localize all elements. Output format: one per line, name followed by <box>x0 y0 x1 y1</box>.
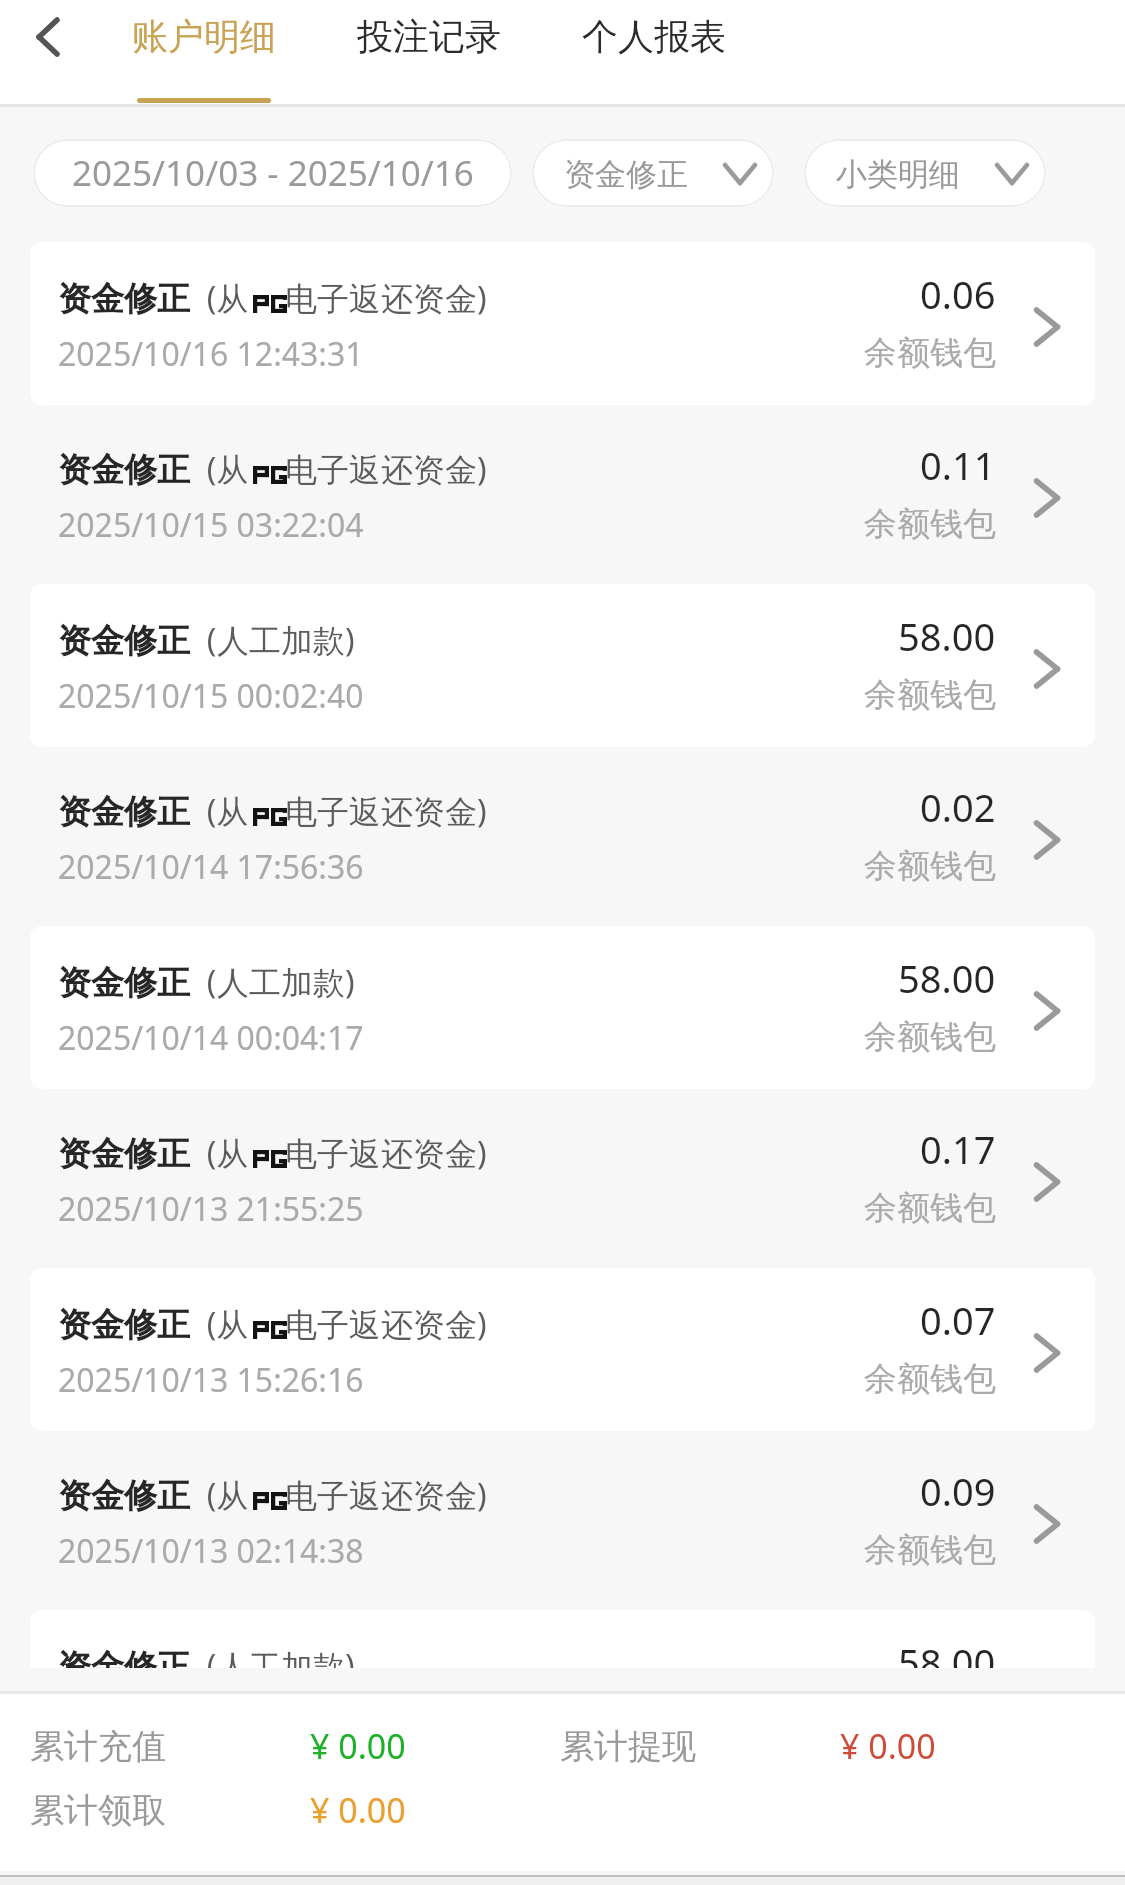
staticText: 2025/10/03 - 2025/10/16 <box>72 149 474 197</box>
staticText: 余额钱包 <box>864 845 996 887</box>
staticText: 2025/10/13 15:26:16 <box>58 1358 364 1402</box>
staticText: 电子返还资金) <box>285 1473 487 1517</box>
staticText: 余额钱包 <box>864 332 996 374</box>
button[interactable]: 资金修正 (从 <box>30 242 1095 405</box>
button[interactable]: 资金修正 (从 <box>30 1268 1095 1431</box>
staticText: 2025/10/14 17:56:36 <box>58 845 364 889</box>
button[interactable]: 投注记录 <box>346 0 511 104</box>
staticText: 0.09 <box>920 1465 996 1517</box>
staticText: 累计提现 <box>560 1725 696 1768</box>
staticText: 余额钱包 <box>864 1016 996 1058</box>
button[interactable]: 资金修正 (从 <box>30 1097 1095 1260</box>
staticText: 余额钱包 <box>864 1187 996 1229</box>
button[interactable]: 资金修正 (从 <box>30 413 1095 576</box>
staticText: 2025/10/14 00:04:17 <box>58 1016 364 1060</box>
staticText: 个人报表 <box>582 14 726 59</box>
staticText: 人工加款) <box>217 960 355 1004</box>
staticText: 0.17 <box>920 1123 996 1175</box>
staticText: 投注记录 <box>357 14 501 59</box>
staticText: 资金修正 (从 <box>58 1131 249 1175</box>
staticText: 电子返还资金) <box>285 1302 487 1346</box>
staticText: 资金修正 ( <box>58 960 217 1004</box>
button[interactable]: 资金修正 (从 <box>30 755 1095 918</box>
staticText: 人工加款) <box>217 618 355 662</box>
staticText: 资金修正 (从 <box>58 276 249 320</box>
staticText: 资金修正 (从 <box>58 447 249 491</box>
staticText: 账户明细 <box>132 14 276 59</box>
staticText: 0.02 <box>920 781 996 833</box>
staticText: 资金修正 (从 <box>58 789 249 833</box>
button[interactable]: 2025/10/03 - 2025/10/16 <box>33 139 512 207</box>
button[interactable]: 资金修正 ( <box>30 926 1095 1089</box>
staticText: 余额钱包 <box>864 503 996 545</box>
button[interactable]: 账户明细 <box>121 0 286 104</box>
staticText: 累计领取 <box>30 1789 166 1832</box>
staticText: 资金修正 (从 <box>58 1473 249 1517</box>
staticText: 58.00 <box>898 952 996 1004</box>
staticText: 电子返还资金) <box>285 789 487 833</box>
staticText: 资金修正 (从 <box>58 1302 249 1346</box>
staticText: 2025/10/13 02:14:38 <box>58 1529 364 1573</box>
staticText: 余额钱包 <box>864 674 996 716</box>
button[interactable]: 资金修正 ( <box>30 584 1095 747</box>
staticText: 人工加款) <box>217 1644 355 1668</box>
staticText: 58.00 <box>898 1636 996 1668</box>
staticText: 0.06 <box>920 268 996 320</box>
button[interactable]: Back <box>12 0 84 104</box>
staticText: 电子返还资金) <box>285 276 487 320</box>
staticText: 资金修正 <box>564 155 688 194</box>
staticText: 58.00 <box>898 610 996 662</box>
staticText: 累计充值 <box>30 1725 166 1768</box>
button[interactable]: 资金修正 <box>532 139 774 207</box>
staticText: 余额钱包 <box>864 1529 996 1571</box>
staticText: 0.07 <box>920 1294 996 1346</box>
staticText: ¥ 0.00 <box>840 1723 936 1769</box>
staticText: 电子返还资金) <box>285 447 487 491</box>
staticText: 2025/10/15 00:02:40 <box>58 674 364 718</box>
button[interactable]: 资金修正 (从 <box>30 1439 1095 1602</box>
staticText: 2025/10/15 03:22:04 <box>58 503 364 547</box>
staticText: ¥ 0.00 <box>310 1723 406 1769</box>
staticText: 资金修正 ( <box>58 618 217 662</box>
staticText: 资金修正 ( <box>58 1644 217 1668</box>
button[interactable]: 个人报表 <box>571 0 736 104</box>
staticText: 余额钱包 <box>864 1358 996 1400</box>
staticText: ¥ 0.00 <box>310 1787 406 1833</box>
staticText: 2025/10/16 12:43:31 <box>58 332 364 376</box>
staticText: 2025/10/13 21:55:25 <box>58 1187 364 1231</box>
staticText: 电子返还资金) <box>285 1131 487 1175</box>
button[interactable]: 小类明细 <box>804 139 1046 207</box>
staticText: 小类明细 <box>836 155 960 194</box>
button[interactable]: 资金修正 ( <box>30 1610 1095 1668</box>
staticText: 0.11 <box>920 439 996 491</box>
